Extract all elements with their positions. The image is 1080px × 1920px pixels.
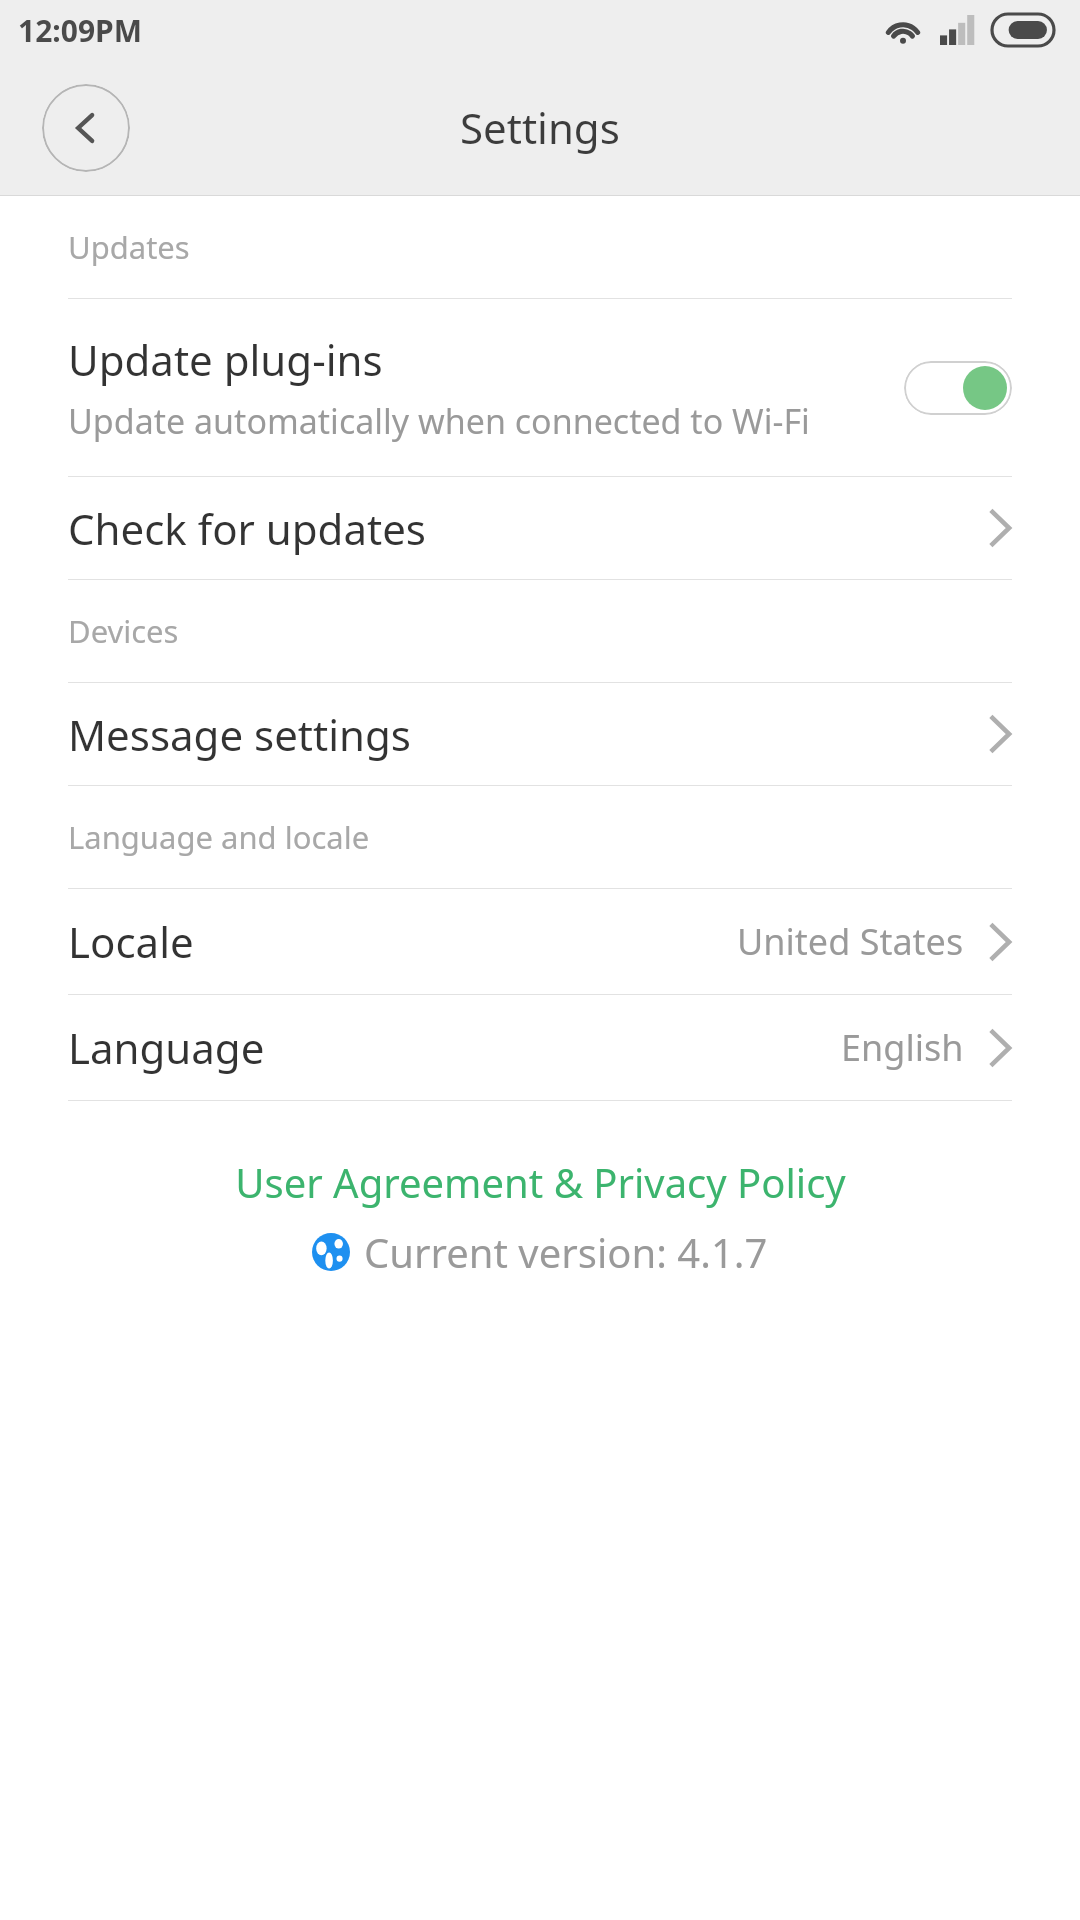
button[interactable]: Language — [0, 995, 1080, 1100]
staticText: Devices — [68, 610, 179, 652]
staticText: User Agreement & Privacy Policy — [235, 1155, 846, 1209]
button[interactable]: Update plug-ins — [0, 299, 1080, 476]
staticText: United States — [737, 917, 964, 966]
staticText: Check for updates — [68, 500, 426, 557]
button[interactable]: Message settings — [0, 683, 1080, 785]
staticText: Settings — [460, 99, 620, 156]
button[interactable]: Back — [42, 84, 130, 172]
staticText: 12:09PM — [18, 10, 142, 51]
staticText: Current version: 4.1.7 — [364, 1225, 768, 1279]
staticText: Language and locale — [68, 816, 370, 858]
button[interactable]: User Agreement & Privacy Policy — [215, 1149, 866, 1215]
staticText: English — [841, 1023, 964, 1072]
button[interactable]: Locale — [0, 889, 1080, 994]
staticText: Message settings — [68, 706, 411, 763]
staticText: Language — [68, 1019, 265, 1076]
staticText: Update plug-ins — [68, 331, 383, 388]
button[interactable]: Update plug-ins toggle — [904, 361, 1012, 415]
button[interactable]: Check for updates — [0, 477, 1080, 579]
staticText: Updates — [68, 226, 190, 268]
staticText: Locale — [68, 913, 194, 970]
staticText: Update automatically when connected to W… — [68, 398, 810, 444]
